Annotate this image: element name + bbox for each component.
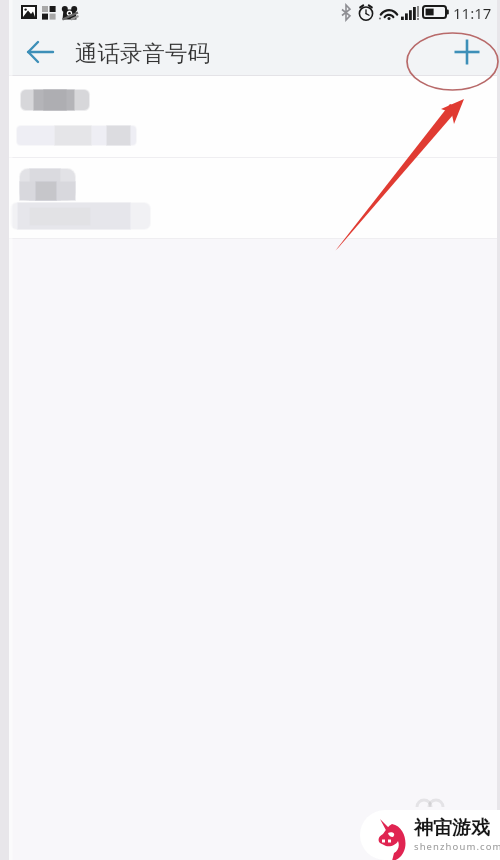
button[interactable]: Back: [21, 30, 65, 74]
button[interactable]: Add: [445, 30, 489, 74]
staticText: 神宙游戏: [414, 816, 490, 840]
button[interactable]: [9, 76, 497, 158]
staticText: 通话录音号码: [75, 39, 210, 67]
staticText: 11:17: [453, 3, 492, 23]
staticText: shenzhoum.com: [414, 840, 500, 853]
button[interactable]: [9, 158, 497, 239]
